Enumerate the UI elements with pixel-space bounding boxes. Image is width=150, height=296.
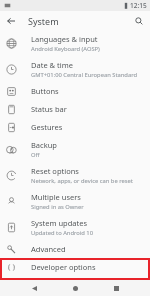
- button[interactable]: Gestures: [0, 118, 150, 136]
- button[interactable]: Search: [132, 14, 146, 28]
- staticText: Advanced: [31, 244, 66, 254]
- button[interactable]: Back: [27, 281, 41, 295]
- staticText: Backup: [31, 140, 57, 150]
- staticText: Signed in as Owner: [31, 203, 84, 211]
- staticText: System: [28, 15, 59, 27]
- staticText: Network, apps, or device can be reset: [31, 177, 133, 185]
- staticText: Status bar: [31, 104, 67, 114]
- button[interactable]: Status bar: [0, 100, 150, 118]
- button[interactable]: Languages & input: [0, 30, 150, 56]
- staticText: Languages & input: [31, 34, 98, 44]
- button[interactable]: Reset options: [0, 162, 150, 188]
- staticText: Android Keyboard (AOSP): [31, 45, 100, 53]
- staticText: Developer options: [31, 262, 96, 272]
- staticText: Gestures: [31, 122, 63, 132]
- button[interactable]: Date & time: [0, 56, 150, 82]
- button[interactable]: Buttons: [0, 82, 150, 100]
- button[interactable]: Back: [4, 14, 18, 28]
- button[interactable]: Advanced: [0, 240, 150, 258]
- staticText: Buttons: [31, 86, 59, 96]
- staticText: Reset options: [31, 166, 79, 176]
- button[interactable]: Home: [68, 281, 82, 295]
- button[interactable]: Multiple users: [0, 188, 150, 214]
- staticText: Multiple users: [31, 192, 81, 202]
- staticText: System updates: [31, 218, 88, 228]
- button[interactable]: Recents: [109, 281, 123, 295]
- button[interactable]: Backup: [0, 136, 150, 162]
- staticText: Off: [31, 151, 40, 159]
- button[interactable]: Developer options: [0, 258, 150, 276]
- staticText: 12:15: [130, 1, 147, 10]
- staticText: Date & time: [31, 60, 73, 70]
- button[interactable]: System updates: [0, 214, 150, 240]
- staticText: Updated to Android 10: [31, 229, 93, 237]
- staticText: GMT+01:00 Central European Standard Time: [31, 71, 144, 79]
